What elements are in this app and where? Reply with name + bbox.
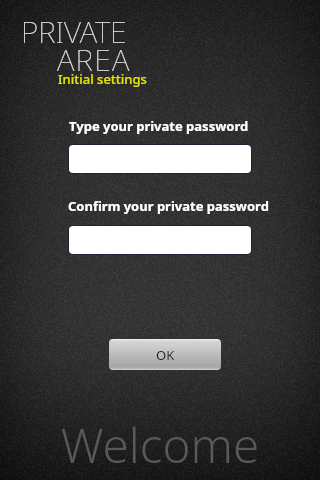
staticText: PRIVATE: [21, 11, 127, 52]
button[interactable]: Type your private password: [69, 145, 251, 173]
staticText: Confirm your private password: [68, 197, 269, 215]
staticText: Welcome: [0, 412, 320, 480]
button[interactable]: OK: [109, 339, 221, 370]
staticText: Initial settings: [58, 70, 147, 88]
button[interactable]: Confirm your private password: [69, 226, 251, 254]
staticText: OK: [156, 346, 175, 364]
staticText: AREA: [57, 39, 131, 80]
staticText: Type your private password: [69, 117, 249, 135]
